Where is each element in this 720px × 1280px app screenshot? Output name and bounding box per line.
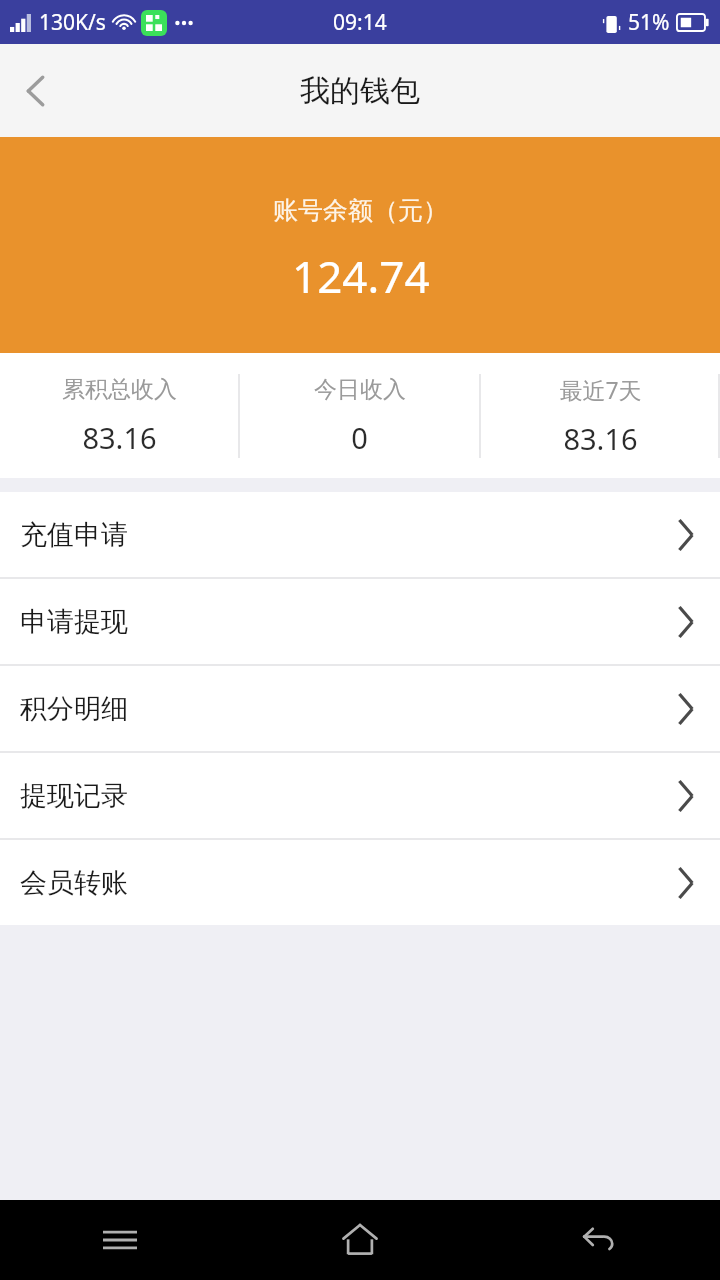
- staticText: 申请提现: [20, 605, 128, 639]
- staticText: 124.74: [292, 246, 430, 306]
- button[interactable]: 充值申请: [0, 492, 720, 577]
- button[interactable]: 提现记录: [0, 753, 720, 838]
- staticText: 会员转账: [20, 866, 128, 900]
- button[interactable]: 会员转账: [0, 840, 720, 925]
- button[interactable]: 申请提现: [0, 579, 720, 664]
- button[interactable]: Back: [480, 1200, 720, 1280]
- staticText: 充值申请: [20, 518, 128, 552]
- button[interactable]: Menu: [0, 1200, 240, 1280]
- staticText: 我的钱包: [300, 72, 420, 110]
- button[interactable]: 积分明细: [0, 666, 720, 751]
- staticText: 83.16: [82, 418, 157, 457]
- staticText: 0: [351, 418, 368, 457]
- staticText: 130K/s: [39, 8, 106, 37]
- staticText: 累积总收入: [62, 375, 177, 404]
- staticText: 最近7天: [559, 374, 642, 405]
- staticText: 账号余额（元）: [273, 195, 448, 226]
- button[interactable]: Back: [0, 55, 72, 127]
- button[interactable]: Home: [240, 1200, 480, 1280]
- staticText: 83.16: [563, 419, 638, 458]
- staticText: 51%: [628, 8, 670, 37]
- staticText: 09:14: [333, 8, 387, 37]
- staticText: 提现记录: [20, 779, 128, 813]
- staticText: 今日收入: [314, 375, 406, 404]
- staticText: 积分明细: [20, 692, 128, 726]
